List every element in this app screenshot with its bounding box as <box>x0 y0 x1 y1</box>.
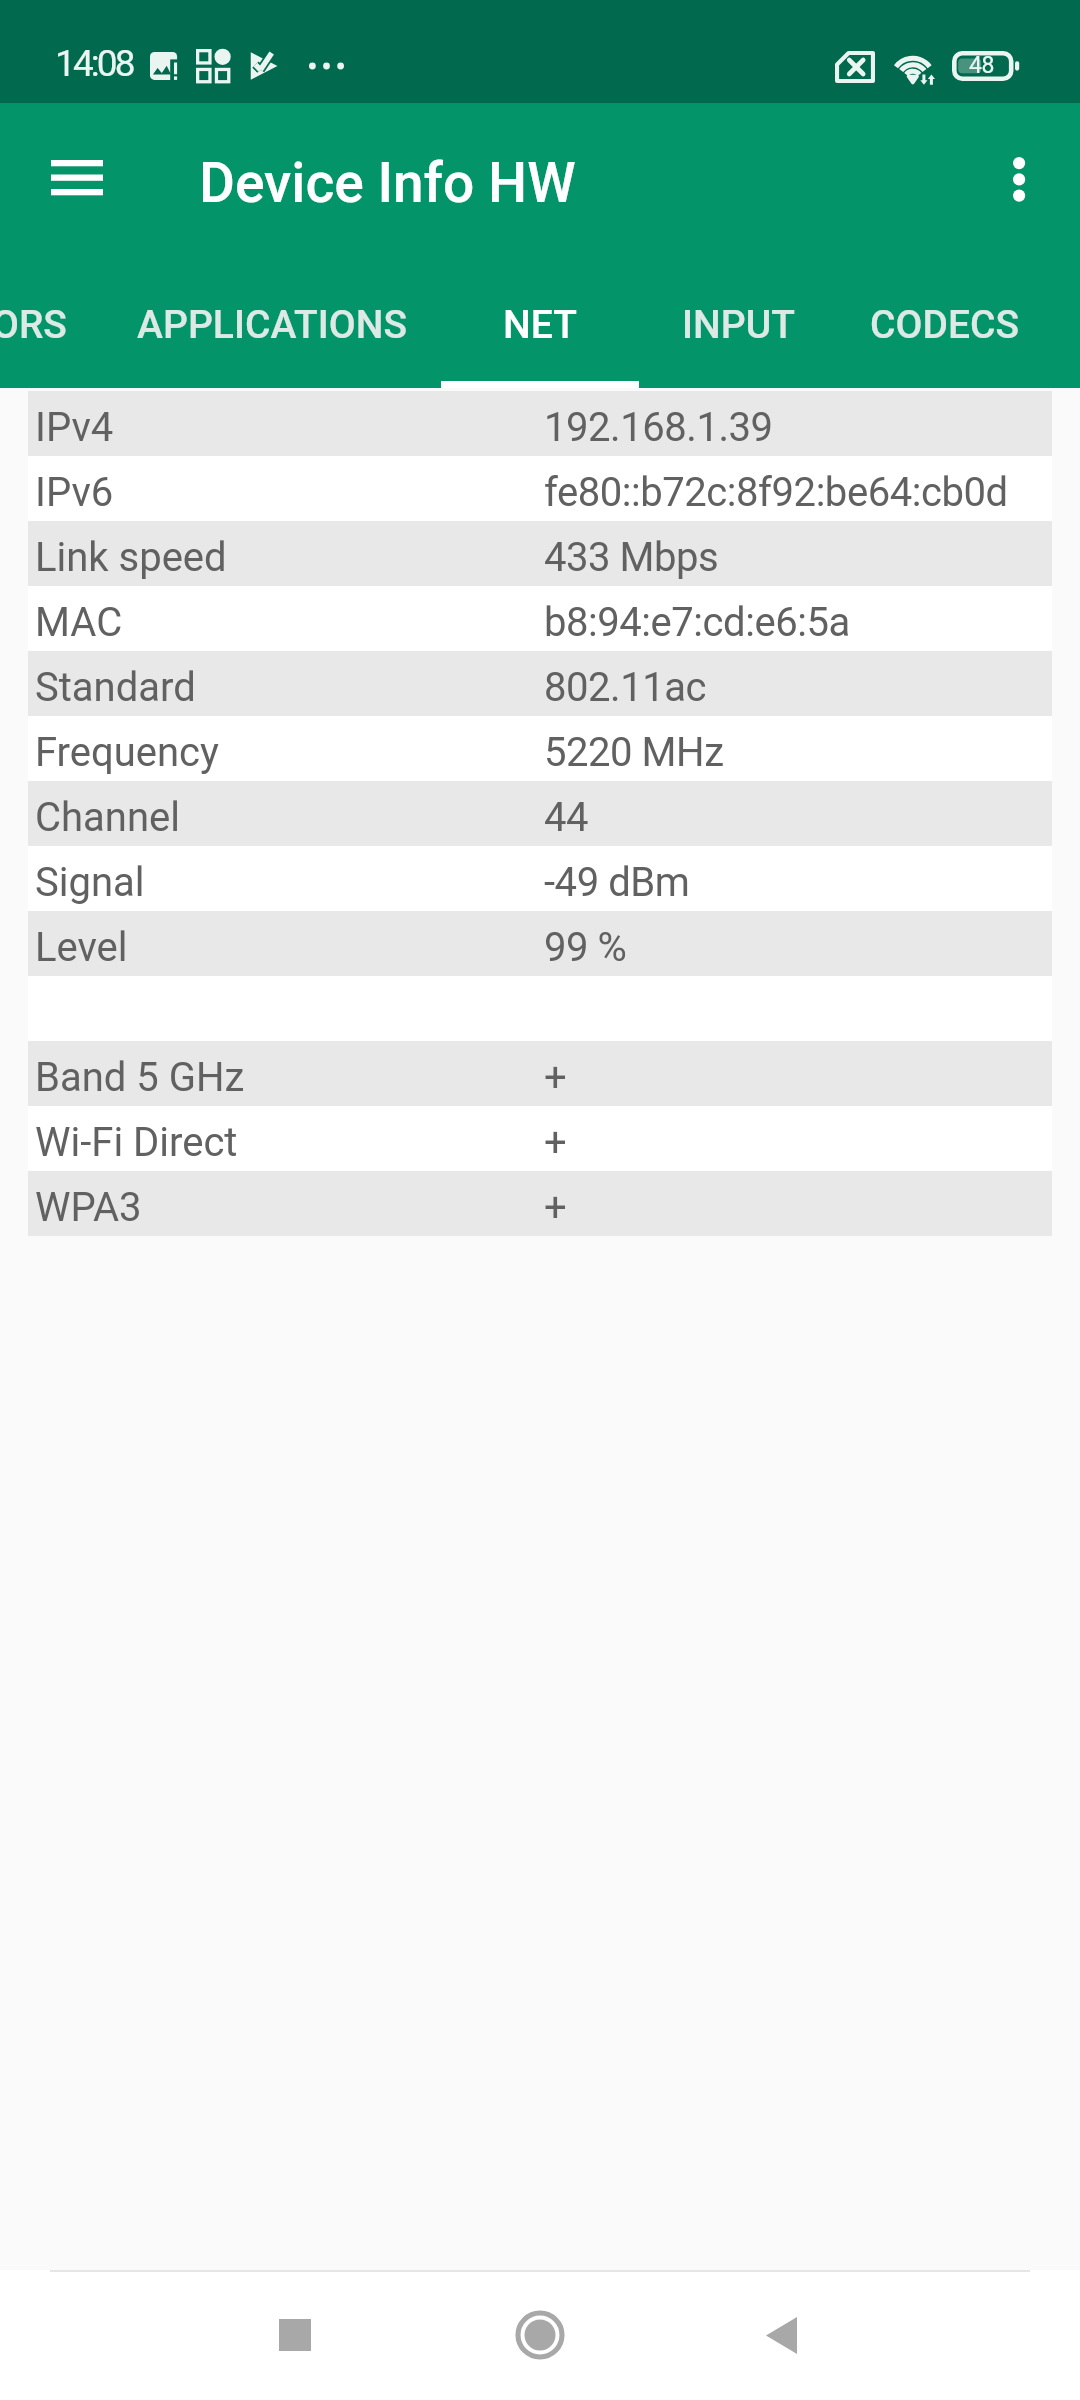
staticText: IPv6 <box>35 469 544 516</box>
staticText: APPLICATIONS <box>137 302 407 348</box>
staticText: 48 <box>969 52 994 79</box>
button[interactable]: Level <box>28 911 1052 976</box>
staticText: MAC <box>35 599 544 646</box>
button[interactable]: Back <box>731 2285 831 2385</box>
staticText: 14:08 <box>55 42 133 85</box>
button[interactable]: CODECS <box>824 280 1064 388</box>
staticText: NET <box>503 302 577 348</box>
button[interactable]: Open navigation drawer <box>25 109 129 213</box>
staticText: INPUT <box>682 302 795 348</box>
button[interactable]: IPv4 <box>28 391 1052 456</box>
button[interactable]: Band 5 GHz <box>28 1041 1052 1106</box>
button[interactable]: APPLICATIONS <box>92 280 452 388</box>
staticText: Signal <box>35 859 544 906</box>
staticText: IPv4 <box>35 404 544 451</box>
staticText: 433 Mbps <box>544 534 719 581</box>
staticText: 44 <box>544 794 589 841</box>
staticText: Frequency <box>35 729 544 776</box>
staticText: -49 dBm <box>544 859 690 906</box>
staticText: + <box>544 1184 567 1231</box>
button[interactable]: WPA3 <box>28 1171 1052 1236</box>
staticText: b8:94:e7:cd:e6:5a <box>544 599 850 646</box>
button[interactable]: More options <box>967 109 1071 213</box>
button[interactable]: IPv6 <box>28 456 1052 521</box>
staticText: + <box>544 1054 567 1101</box>
staticText: Link speed <box>35 534 544 581</box>
staticText: 192.168.1.39 <box>544 404 773 451</box>
staticText: fe80::b72c:8f92:be64:cb0d <box>544 469 1008 516</box>
staticText: SENSORS <box>0 302 67 348</box>
staticText: WPA3 <box>35 1184 544 1231</box>
button[interactable]: Link speed <box>28 521 1052 586</box>
staticText: 5220 MHz <box>544 729 724 776</box>
button[interactable]: MAC <box>28 586 1052 651</box>
staticText: + <box>544 1119 567 1166</box>
staticText: 99 % <box>544 924 627 971</box>
staticText: Standard <box>35 664 544 711</box>
button[interactable]: SENSORS <box>0 280 131 388</box>
staticText: Device Info HW <box>199 151 576 215</box>
button[interactable]: Wi-Fi Direct <box>28 1106 1052 1171</box>
button[interactable]: Signal <box>28 846 1052 911</box>
button[interactable]: Recent apps <box>245 2285 345 2385</box>
button[interactable]: Channel <box>28 781 1052 846</box>
button[interactable]: Frequency <box>28 716 1052 781</box>
staticText: Level <box>35 924 544 971</box>
staticText: Band 5 GHz <box>35 1054 544 1101</box>
button[interactable]: INPUT <box>639 280 837 388</box>
staticText: 802.11ac <box>544 664 707 711</box>
staticText: Channel <box>35 794 544 841</box>
button[interactable]: Home <box>490 2285 590 2385</box>
staticText: CODECS <box>870 302 1019 348</box>
button[interactable]: NET <box>441 280 639 388</box>
staticText: Wi-Fi Direct <box>35 1119 544 1166</box>
button[interactable]: Standard <box>28 651 1052 716</box>
